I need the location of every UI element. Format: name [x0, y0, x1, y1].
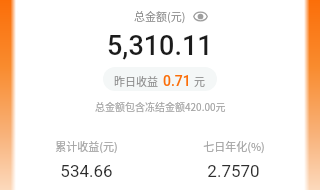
- button[interactable]: 昨日收益: [103, 67, 217, 91]
- staticText: 元: [194, 73, 205, 89]
- staticText: 5,310.11: [107, 30, 213, 62]
- staticText: 昨日收益: [114, 73, 158, 89]
- staticText: 七日年化(%): [203, 138, 265, 154]
- button[interactable]: Toggle balance visibility: [193, 9, 208, 24]
- button[interactable]: 累计收益(元): [13, 138, 160, 181]
- staticText: 总金额包含冻结金额420.00元: [95, 99, 226, 113]
- staticText: 0.71: [163, 73, 191, 89]
- staticText: 534.66: [60, 161, 113, 181]
- button[interactable]: 总金额(元): [132, 7, 188, 25]
- staticText: 总金额(元): [134, 8, 186, 24]
- staticText: 累计收益(元): [55, 138, 118, 154]
- staticText: 2.7570: [207, 161, 260, 181]
- button[interactable]: 七日年化(%): [160, 138, 307, 181]
